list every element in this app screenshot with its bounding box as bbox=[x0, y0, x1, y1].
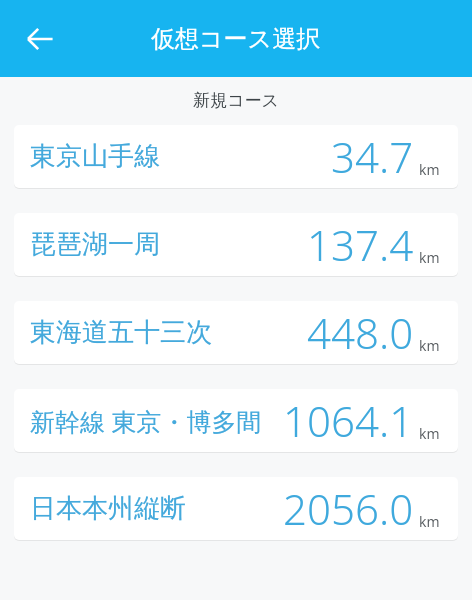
staticText: 新幹線 東京・博多間 bbox=[30, 404, 262, 438]
staticText: 琵琶湖一周 bbox=[30, 228, 160, 261]
staticText: km bbox=[419, 424, 440, 443]
staticText: km bbox=[419, 512, 440, 531]
staticText: 448.0 bbox=[307, 304, 414, 361]
staticText: km bbox=[419, 160, 440, 179]
staticText: 日本本州縦断 bbox=[30, 492, 186, 525]
staticText: 東京山手線 bbox=[30, 140, 160, 173]
staticText: 34.7 bbox=[331, 128, 414, 185]
staticText: 新規コース bbox=[0, 90, 472, 111]
staticText: km bbox=[419, 336, 440, 355]
button[interactable]: 琵琶湖一周 bbox=[14, 213, 458, 276]
staticText: 137.4 bbox=[307, 216, 414, 273]
staticText: 東海道五十三次 bbox=[30, 316, 212, 349]
staticText: km bbox=[419, 248, 440, 267]
button[interactable]: Back bbox=[12, 11, 68, 67]
staticText: 2056.0 bbox=[283, 480, 414, 537]
staticText: 1064.1 bbox=[283, 392, 414, 449]
button[interactable]: 東京山手線 bbox=[14, 125, 458, 188]
button[interactable]: 東海道五十三次 bbox=[14, 301, 458, 364]
button[interactable]: 日本本州縦断 bbox=[14, 477, 458, 540]
staticText: 仮想コース選択 bbox=[151, 24, 321, 54]
button[interactable]: 新幹線 東京・博多間 bbox=[14, 389, 458, 452]
